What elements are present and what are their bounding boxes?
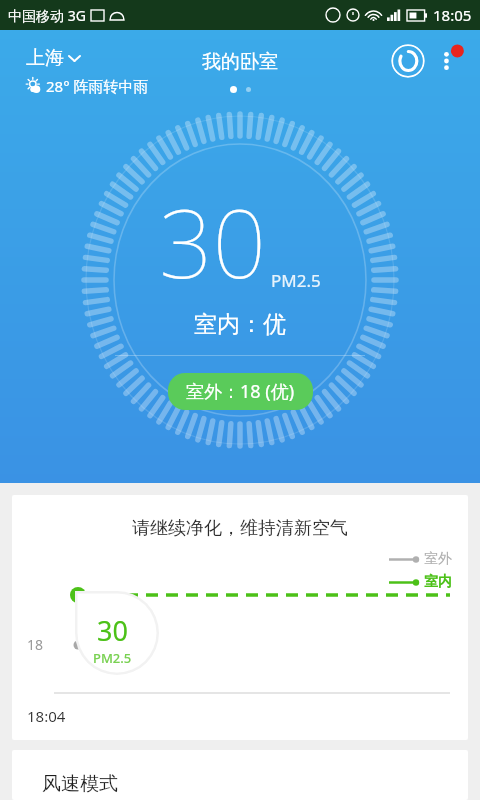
staticText: 30 <box>97 612 128 649</box>
staticText: 30 <box>159 178 267 306</box>
staticText: 18:05 <box>433 5 472 25</box>
staticText: PM2.5 <box>271 269 321 292</box>
staticText: 28° 阵雨转中雨 <box>46 76 149 96</box>
button[interactable]: 上海 <box>26 46 149 96</box>
button[interactable]: 请继续净化，维持清新空气 <box>12 495 468 740</box>
staticText: 上海 <box>26 46 64 70</box>
staticText: 请继续净化，维持清新空气 <box>132 517 348 540</box>
staticText: 18 <box>27 635 44 654</box>
staticText: PM2.5 <box>93 649 132 667</box>
staticText: 室外：18 (优) <box>186 379 295 404</box>
button[interactable]: 我的卧室 <box>202 50 278 74</box>
staticText: 室内：优 <box>194 310 286 339</box>
staticText: 18:04 <box>27 706 66 726</box>
staticText: 中国移动 3G <box>8 6 86 25</box>
staticText: 室外 <box>424 550 452 568</box>
staticText: 室内 <box>424 573 452 591</box>
button[interactable]: 风速模式 <box>12 750 468 800</box>
button[interactable]: Sleep mode <box>391 44 425 78</box>
staticText: 风速模式 <box>42 772 118 796</box>
button[interactable]: More options <box>428 40 470 82</box>
button[interactable]: 室外：18 (优) <box>168 373 313 410</box>
